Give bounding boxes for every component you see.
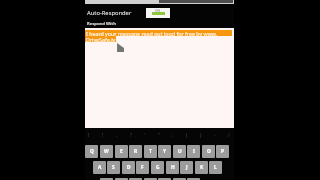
staticText: ' xyxy=(144,132,146,138)
button[interactable]: S xyxy=(107,161,120,174)
staticText: T xyxy=(149,148,152,155)
staticText: F xyxy=(141,164,144,171)
button[interactable]: E xyxy=(115,145,128,158)
staticText: Auto-Responder xyxy=(87,9,132,17)
button[interactable]: W xyxy=(100,145,113,158)
button[interactable]: K xyxy=(195,161,208,174)
staticText: O xyxy=(207,148,211,155)
staticText: I xyxy=(193,148,195,155)
button[interactable]: A xyxy=(93,161,106,174)
staticText: Respond With xyxy=(87,21,116,27)
staticText: : xyxy=(172,132,174,138)
staticText: ) xyxy=(200,132,202,138)
button[interactable]: T xyxy=(144,145,157,158)
button[interactable]: O xyxy=(202,145,215,158)
staticText: / xyxy=(228,132,230,138)
button[interactable]: G xyxy=(151,161,164,174)
staticText: L xyxy=(214,164,217,171)
staticText: I heard your message read out loud for f… xyxy=(86,30,218,37)
button[interactable]: Q xyxy=(85,145,98,158)
button[interactable]: P xyxy=(216,145,229,158)
staticText: H xyxy=(171,164,175,171)
button[interactable]: Y xyxy=(158,145,171,158)
button[interactable]: M xyxy=(187,178,200,180)
staticText: ON xyxy=(155,9,160,13)
staticText: Y xyxy=(163,148,167,155)
staticText: ! xyxy=(102,132,104,138)
staticText: G xyxy=(156,164,160,171)
staticText: E xyxy=(120,148,123,155)
staticText: Q xyxy=(90,148,94,155)
staticText: S xyxy=(112,164,115,171)
button[interactable]: L xyxy=(209,161,222,174)
button[interactable]: F xyxy=(136,161,149,174)
staticText: ( xyxy=(186,132,188,138)
button[interactable]: Toggle auto responder xyxy=(146,8,170,18)
button[interactable]: D xyxy=(122,161,135,174)
staticText: D xyxy=(127,164,131,171)
button[interactable]: H xyxy=(166,161,179,174)
button[interactable]: U xyxy=(173,145,186,158)
button[interactable]: X xyxy=(115,178,128,180)
staticText: ? xyxy=(130,132,132,138)
button[interactable]: R xyxy=(129,145,142,158)
staticText: - xyxy=(214,132,216,138)
button[interactable]: C xyxy=(129,178,142,180)
staticText: , xyxy=(116,132,118,138)
button[interactable]: B xyxy=(158,178,171,180)
button[interactable]: V xyxy=(144,178,157,180)
button[interactable]: Z xyxy=(100,178,113,180)
button[interactable]: N xyxy=(173,178,186,180)
staticText: K xyxy=(200,164,204,171)
button[interactable]: I xyxy=(187,145,200,158)
staticText: P xyxy=(221,148,224,155)
staticText: R xyxy=(134,148,138,155)
staticText: DriveSafe.ly xyxy=(86,36,116,43)
button[interactable]: J xyxy=(180,161,193,174)
staticText: 1 xyxy=(87,132,90,138)
staticText: J xyxy=(186,164,188,171)
staticText: U xyxy=(178,148,182,155)
staticText: W xyxy=(104,148,109,155)
staticText: A xyxy=(98,164,102,171)
staticText: " xyxy=(158,132,160,138)
